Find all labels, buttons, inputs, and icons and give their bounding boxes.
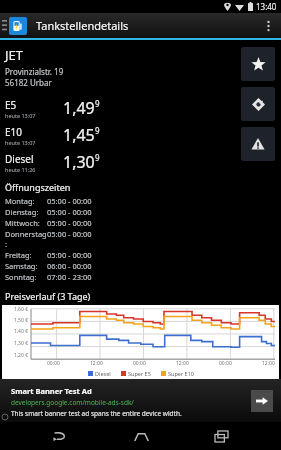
staticText: Diesel [95,370,111,377]
staticText: developers.google.com/mobile-ads-sdk/ [11,398,134,407]
staticText: 9 [95,98,100,109]
staticText: 9 [95,125,100,136]
staticText: Dienstag: [5,207,47,217]
staticText: Samstag: [5,261,47,271]
staticText: 1,30 € [2,340,28,347]
staticText: 07:00 - 23:00 [47,272,92,282]
button[interactable]: Report problem [241,127,275,161]
staticText: Diesel [5,152,34,166]
staticText: Montag: [5,196,47,206]
staticText: heute 13:07 [5,139,36,146]
staticText: Preisverlauf (3 Tage) [5,290,91,302]
staticText: 9 [95,152,100,163]
staticText: 12:00 [176,360,189,367]
staticText: 00:00 [133,360,146,367]
staticText: 1,40 € [2,328,28,335]
button[interactable]: App icon [9,17,27,35]
staticText: JET [5,46,24,64]
staticText: Öffnungszeiten [5,181,71,193]
staticText: Freitag: [5,250,47,260]
button[interactable]: Smart Banner Test Ad [0,379,281,422]
staticText: 56182 Urbar [5,77,52,88]
staticText: 13:40 [256,1,277,12]
staticText: This smart banner test ad spans the enti… [11,409,182,418]
staticText: 05:00 - 00:00 [47,196,92,206]
staticText: Super E5 [128,370,151,377]
button[interactable]: Directions [241,87,275,121]
button[interactable]: Open ad [251,390,273,412]
staticText: 12:00 [262,360,275,367]
staticText: 05:00 - 00:00 [47,218,92,228]
staticText: 1,60 € [2,306,28,313]
button[interactable]: Back [40,423,80,449]
staticText: Smart Banner Test Ad [11,386,92,396]
staticText: Provinzialstr. 19 [5,66,64,77]
button[interactable]: Home [121,423,161,449]
staticText: 1,49 [63,97,95,119]
staticText: Tankstellendetails [36,18,129,33]
button[interactable]: Recent apps [201,423,241,449]
staticText: Donnerstag: [5,229,47,249]
staticText: 05:00 - 00:00 [47,207,92,217]
staticText: 00:00 [47,360,60,367]
staticText: 1,30 [63,151,95,173]
staticText: 05:00 - 00:00 [47,250,92,260]
staticText: Sonntag: [5,272,47,282]
staticText: heute 13:07 [5,112,36,119]
staticText: E5 [5,98,17,112]
staticText: E10 [5,125,22,139]
staticText: heute 11:26 [5,166,36,173]
staticText: 1,50 € [2,317,28,324]
staticText: 1,45 [63,124,95,146]
button[interactable]: Favorite [241,47,275,81]
staticText: 12:00 [90,360,103,367]
staticText: Super E10 [168,370,194,377]
staticText: 05:00 - 00:00 [47,229,92,239]
button[interactable]: More options [259,13,277,38]
staticText: 06:00 - 00:00 [47,261,92,271]
staticText: 00:00 [219,360,232,367]
staticText: Mittwoch: [5,218,47,228]
staticText: 1,20 € [2,352,28,359]
